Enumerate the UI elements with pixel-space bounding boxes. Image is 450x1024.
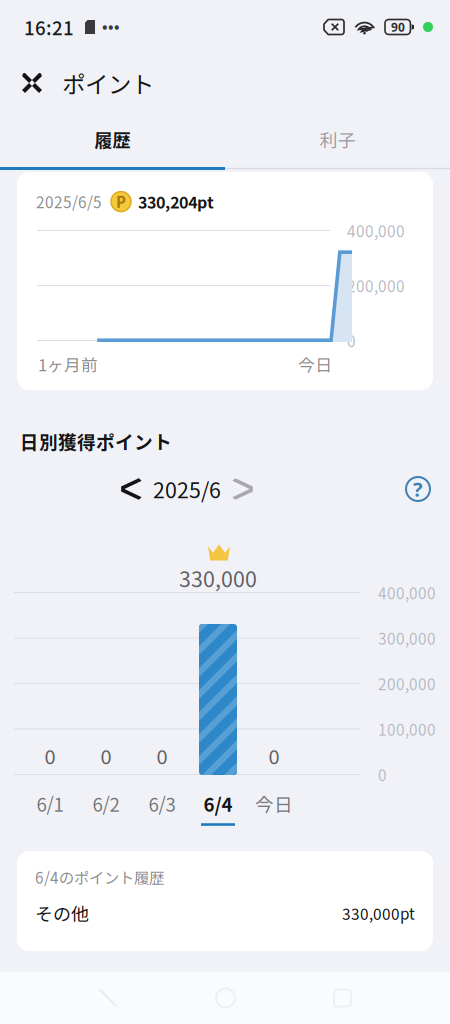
staticText: 0 <box>156 741 167 770</box>
staticText: 0 <box>100 741 111 770</box>
button[interactable]: 6/2 <box>78 788 134 828</box>
staticText: 200,000 <box>347 274 405 297</box>
staticText: 0 <box>347 329 356 352</box>
staticText: ? <box>413 476 423 502</box>
staticText: 200,000 <box>378 672 436 695</box>
staticText: 330,000 <box>179 563 257 593</box>
button[interactable]: ヘルプ <box>396 467 440 511</box>
button[interactable]: 今日 <box>246 788 302 828</box>
staticText: 400,000 <box>347 219 405 242</box>
staticText: 6/2 <box>92 790 119 817</box>
staticText: 400,000 <box>378 581 436 604</box>
staticText: 2025/6/5 <box>36 190 102 213</box>
staticText: 日別獲得ポイント <box>20 427 172 454</box>
staticText: 0 <box>44 741 55 770</box>
staticText: 16:21 <box>24 13 74 40</box>
staticText: その他 <box>35 900 89 926</box>
staticText: 6/3 <box>148 790 175 817</box>
staticText: 履歴 <box>94 126 130 153</box>
staticText: 今日 <box>298 352 332 376</box>
staticText: 0 <box>268 741 279 770</box>
staticText: 330,204pt <box>138 190 214 213</box>
staticText: 利子 <box>319 126 355 153</box>
button[interactable]: 利子 <box>225 112 450 167</box>
staticText: 0 <box>378 763 387 786</box>
button[interactable]: 6/3 <box>134 788 190 828</box>
button[interactable]: 6/1 <box>22 788 78 828</box>
button[interactable]: 前の月 <box>110 469 150 509</box>
staticText: 90 <box>391 19 405 35</box>
button[interactable]: 閉じる <box>12 61 52 105</box>
staticText: 330,000pt <box>342 902 415 924</box>
staticText: 今日 <box>255 790 293 817</box>
staticText: 100,000 <box>378 718 436 740</box>
staticText: 300,000 <box>378 627 436 649</box>
staticText: 1ヶ月前 <box>38 352 98 376</box>
staticText: ••• <box>102 17 120 37</box>
staticText: 6/4 <box>203 790 232 817</box>
staticText: ポイント <box>62 66 154 100</box>
staticText: 6/1 <box>36 790 63 817</box>
button[interactable]: 履歴 <box>0 112 225 167</box>
staticText: 2025/6 <box>153 474 221 504</box>
staticText: 6/4のポイント履歴 <box>35 866 164 888</box>
button[interactable]: 次の月 <box>224 469 264 509</box>
staticText: P <box>116 191 126 212</box>
button[interactable]: 6/4 <box>190 788 246 828</box>
